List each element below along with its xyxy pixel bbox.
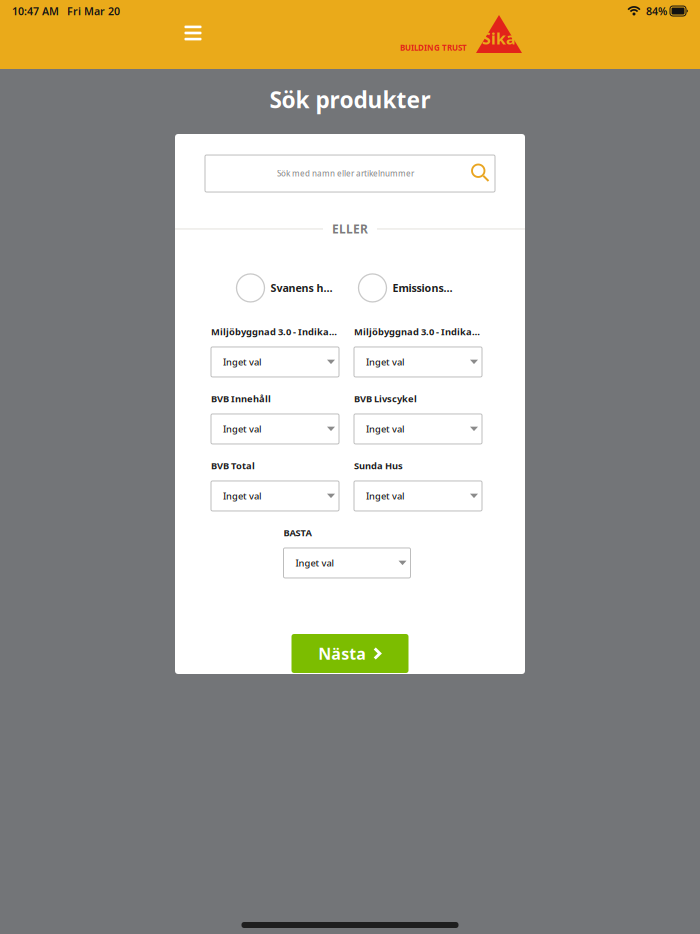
- staticText: BVB Innehåll: [211, 392, 271, 405]
- button[interactable]: Svanens h…: [236, 274, 332, 302]
- staticText: Inget val: [366, 490, 405, 502]
- staticText: Sika: [482, 28, 516, 49]
- staticText: 84%: [646, 4, 667, 18]
- staticText: Inget val: [295, 557, 334, 569]
- staticText: ELLER: [332, 221, 368, 237]
- button[interactable]: Miljöbyggnad 3.0 - Indikat…: [211, 320, 339, 377]
- staticText: Emissions…: [392, 281, 452, 295]
- staticText: BASTA: [283, 526, 311, 539]
- staticText: Inget val: [366, 356, 405, 368]
- staticText: Inget val: [366, 423, 405, 435]
- staticText: Sök med namn eller artikelnummer: [277, 168, 414, 179]
- button[interactable]: Sunda Hus: [354, 454, 482, 511]
- button[interactable]: Emissions…: [358, 274, 452, 302]
- button[interactable]: Menu: [178, 18, 208, 48]
- staticText: 10:47 AM: [12, 4, 59, 18]
- staticText: Sök produkter: [269, 84, 430, 114]
- staticText: Fri Mar 20: [67, 4, 120, 18]
- staticText: Svanens h…: [270, 281, 332, 295]
- staticText: Inget val: [223, 490, 262, 502]
- staticText: Inget val: [223, 423, 262, 435]
- staticText: BVB Livscykel: [354, 392, 417, 405]
- button[interactable]: Miljöbyggnad 3.0 - Indikat…: [354, 320, 482, 377]
- staticText: BVB Total: [211, 459, 255, 472]
- button[interactable]: BVB Livscykel: [354, 387, 482, 444]
- staticText: Nästa: [318, 643, 366, 664]
- staticText: Sunda Hus: [354, 459, 403, 472]
- staticText: BUILDING TRUST: [400, 42, 467, 53]
- button[interactable]: BVB Total: [211, 454, 339, 511]
- button[interactable]: BASTA: [283, 521, 410, 578]
- staticText: Miljöbyggnad 3.0 - Indikat…: [211, 325, 339, 338]
- staticText: Miljöbyggnad 3.0 - Indikat…: [354, 325, 482, 338]
- staticText: Inget val: [223, 356, 262, 368]
- button[interactable]: BVB Innehåll: [211, 387, 339, 444]
- button[interactable]: Nästa: [291, 634, 408, 673]
- button[interactable]: Sök med namn eller artikelnummer: [205, 155, 495, 192]
